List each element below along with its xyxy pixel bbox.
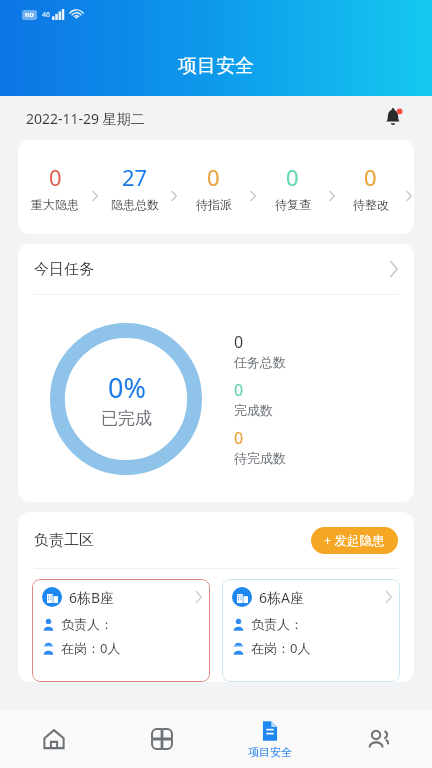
staticText: 项目安全 <box>248 745 292 759</box>
staticText: 待指派 <box>196 197 232 212</box>
button[interactable]: + 发起隐患 <box>311 527 398 554</box>
staticText: 负责人： <box>251 616 303 632</box>
staticText: 46 <box>42 10 51 20</box>
staticText: 在岗：0人 <box>61 639 121 657</box>
staticText: 待复查 <box>275 197 311 212</box>
staticText: 0% <box>108 369 146 406</box>
button[interactable]: Apps <box>108 710 216 768</box>
staticText: 重大隐患 <box>31 197 79 212</box>
staticText: 在岗：0人 <box>251 639 311 657</box>
button[interactable]: 6栋B座 <box>32 579 210 682</box>
button[interactable]: 项目安全 <box>216 710 324 768</box>
button[interactable]: 0 <box>177 140 256 234</box>
staticText: 待整改 <box>353 197 389 212</box>
staticText: HD <box>25 11 34 19</box>
staticText: 已完成 <box>101 408 152 429</box>
staticText: 完成数 <box>234 402 273 418</box>
staticText: 0 <box>49 162 62 192</box>
button[interactable]: 0 <box>18 140 98 234</box>
staticText: 0 <box>207 162 220 192</box>
button[interactable]: 今日任务 <box>18 244 414 294</box>
staticText: 0 <box>286 162 299 192</box>
staticText: 隐患总数 <box>111 197 159 212</box>
staticText: 项目安全 <box>178 54 254 78</box>
staticText: 0 <box>364 162 377 192</box>
staticText: 待完成数 <box>234 450 286 466</box>
button[interactable]: Contacts <box>324 710 432 768</box>
staticText: 任务总数 <box>234 354 286 370</box>
staticText: 6栋A座 <box>259 588 304 607</box>
button[interactable]: 0 <box>335 140 414 234</box>
staticText: 负责人： <box>61 616 113 632</box>
button[interactable]: Notifications <box>380 105 406 131</box>
button[interactable]: 27 <box>98 140 177 234</box>
button[interactable]: 6栋A座 <box>222 579 400 682</box>
staticText: 0 <box>234 379 244 401</box>
button[interactable]: Home <box>0 710 108 768</box>
staticText: 0 <box>234 427 244 449</box>
staticText: 负责工区 <box>34 531 94 550</box>
staticText: 27 <box>122 162 148 192</box>
staticText: 2022-11-29 星期二 <box>26 109 145 128</box>
staticText: 今日任务 <box>34 260 94 279</box>
staticText: 6栋B座 <box>69 588 115 607</box>
button[interactable]: 0 <box>256 140 335 234</box>
staticText: + 发起隐患 <box>324 532 385 549</box>
staticText: 0 <box>234 331 244 353</box>
